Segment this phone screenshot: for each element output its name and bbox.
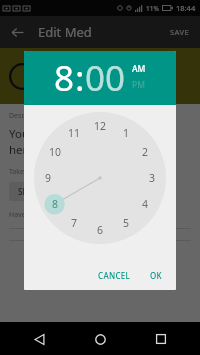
staticText: SAVE	[170, 27, 190, 37]
staticText: 18:44	[176, 3, 196, 13]
staticText: CANCEL	[98, 270, 131, 281]
button[interactable]: 12	[94, 119, 107, 133]
staticText: 4	[142, 197, 149, 211]
staticText: 11	[68, 126, 81, 140]
button[interactable]: Home	[87, 326, 113, 352]
button[interactable]: PM	[132, 79, 145, 91]
button[interactable]: 5	[123, 216, 130, 230]
button[interactable]: 7	[71, 216, 78, 230]
button[interactable]: 1	[123, 126, 130, 140]
staticText: 9	[45, 171, 52, 185]
staticText: 10	[49, 145, 62, 159]
button[interactable]: SAVE	[167, 22, 193, 42]
button[interactable]: 10	[49, 145, 62, 159]
button[interactable]: OK	[145, 264, 167, 287]
button[interactable]: Recent apps	[148, 326, 174, 352]
button[interactable]: Navigate up	[7, 22, 27, 42]
staticText: 00	[85, 54, 126, 102]
staticText: 12	[94, 119, 107, 133]
button[interactable]: 3	[149, 171, 156, 185]
button[interactable]: 4	[142, 197, 149, 211]
button[interactable]: 9	[45, 171, 52, 185]
button[interactable]: 6	[97, 223, 104, 237]
staticText: Edit Med	[38, 23, 92, 41]
button[interactable]: SET TIME	[9, 182, 62, 201]
staticText: 8	[54, 54, 75, 102]
staticText: 8	[52, 197, 59, 211]
staticText: 7	[71, 216, 78, 230]
button[interactable]: Back	[26, 326, 52, 352]
staticText: SET TIME	[18, 186, 53, 197]
staticText: 11%	[146, 4, 159, 13]
staticText: AM	[132, 63, 146, 75]
staticText: Have you taken this med	[9, 210, 91, 220]
button[interactable]: 8	[54, 54, 75, 102]
staticText: Take medication	[9, 167, 63, 177]
button[interactable]: 00	[85, 54, 126, 102]
staticText: 6	[97, 223, 104, 237]
staticText: 5	[123, 216, 130, 230]
button[interactable]: AM	[132, 63, 146, 75]
staticText: 2	[142, 145, 149, 159]
staticText: :	[75, 54, 85, 102]
staticText: 3	[149, 171, 156, 185]
staticText: OK	[150, 270, 162, 281]
staticText: You should take this med in	[9, 126, 159, 142]
staticText: 1	[123, 126, 130, 140]
staticText: here	[9, 142, 34, 158]
button[interactable]: CANCEL	[93, 264, 136, 287]
button[interactable]: 11	[68, 126, 81, 140]
button[interactable]: 8	[52, 197, 59, 211]
button[interactable]: 2	[142, 145, 149, 159]
staticText: PM	[132, 79, 145, 91]
staticText: Description	[9, 111, 47, 121]
